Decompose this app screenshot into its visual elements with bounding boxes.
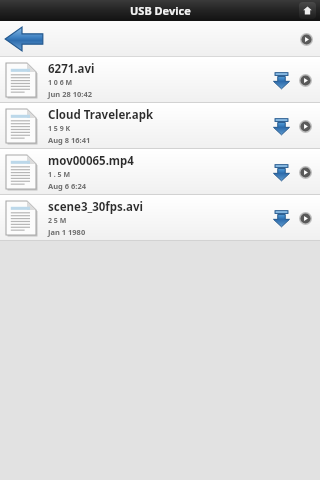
button[interactable]: scene3_30fps.avi	[0, 195, 320, 240]
staticText: 1 5 9 K	[48, 124, 71, 134]
button[interactable]: Open	[296, 209, 314, 227]
button[interactable]: More	[297, 30, 315, 48]
staticText: 2 5 M	[48, 216, 67, 226]
button[interactable]: Open	[296, 163, 314, 181]
staticText: Cloud Traveler.apk	[48, 107, 154, 123]
staticText: 6271.avi	[48, 61, 95, 77]
staticText: USB Device	[130, 3, 191, 18]
button[interactable]: 6271.avi	[0, 57, 320, 102]
staticText: Jan 1 1980	[48, 227, 86, 237]
staticText: Jun 28 10:42	[48, 89, 92, 99]
button[interactable]: Download	[268, 67, 294, 93]
button[interactable]: Download	[268, 205, 294, 231]
button[interactable]: mov00065.mp4	[0, 149, 320, 194]
staticText: Aug 6 6:24	[48, 181, 86, 191]
staticText: scene3_30fps.avi	[48, 199, 143, 215]
button[interactable]: Download	[268, 159, 294, 185]
button[interactable]: Download	[268, 113, 294, 139]
button[interactable]: Home	[299, 2, 316, 19]
staticText: 1 . 5 M	[48, 170, 71, 180]
staticText: 1 0 6 M	[48, 78, 73, 88]
staticText: mov00065.mp4	[48, 153, 134, 169]
staticText: Aug 8 16:41	[48, 135, 91, 145]
button[interactable]: Back	[2, 23, 46, 55]
button[interactable]: Cloud Traveler.apk	[0, 103, 320, 148]
button[interactable]: Open	[296, 117, 314, 135]
button[interactable]: Open	[296, 71, 314, 89]
